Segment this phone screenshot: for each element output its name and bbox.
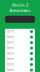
staticText: Americans [9,7,30,13]
staticText: One in 2 [12,2,28,7]
staticText: Item [7,63,13,66]
staticText: Item [7,57,13,61]
staticText: Item [7,52,13,55]
staticText: Item [7,35,13,39]
staticText: Item [7,68,13,72]
staticText: Item [7,41,13,44]
staticText: Item [7,46,13,50]
staticText: Item [7,30,13,33]
